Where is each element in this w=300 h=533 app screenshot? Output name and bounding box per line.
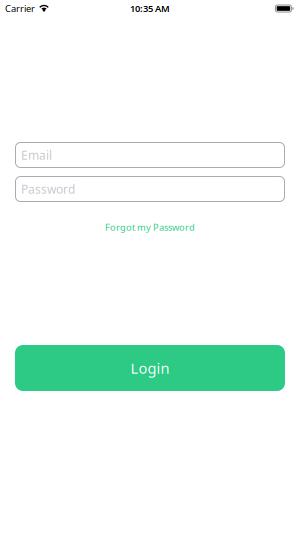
staticText: 10:35 AM (130, 2, 170, 15)
staticText: Password (21, 181, 75, 197)
button[interactable]: Email (15, 142, 285, 168)
button[interactable]: Password (15, 176, 285, 202)
staticText: Carrier (5, 2, 35, 15)
staticText: Forgot my Password (105, 221, 195, 233)
staticText: Login (130, 358, 169, 378)
button[interactable]: Forgot my Password (105, 221, 195, 233)
button[interactable]: Login (15, 345, 285, 391)
staticText: Email (21, 147, 52, 163)
